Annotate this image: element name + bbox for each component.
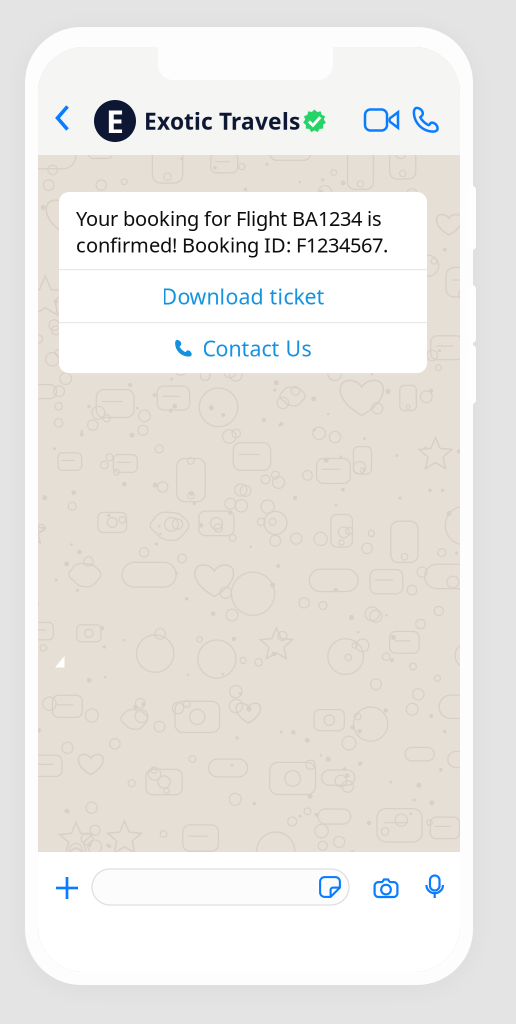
button[interactable]: Contact Us	[59, 323, 427, 373]
button[interactable]: Download ticket	[59, 270, 427, 322]
button[interactable]: Stickers	[319, 876, 341, 898]
button[interactable]: Voice call	[406, 100, 446, 140]
button[interactable]: Video call	[360, 100, 404, 140]
button[interactable]: Camera	[370, 873, 402, 903]
button[interactable]: Attach	[47, 868, 87, 908]
button[interactable]: Back	[41, 96, 85, 140]
staticText: Contact Us	[202, 334, 311, 362]
button[interactable]: E	[94, 99, 326, 143]
staticText: E	[106, 100, 124, 142]
staticText: Download ticket	[161, 282, 324, 310]
staticText: Your booking for Flight BA1234 is confir…	[76, 205, 388, 258]
button[interactable]: Voice message	[422, 872, 448, 902]
staticText: Exotic Travels	[144, 106, 300, 136]
